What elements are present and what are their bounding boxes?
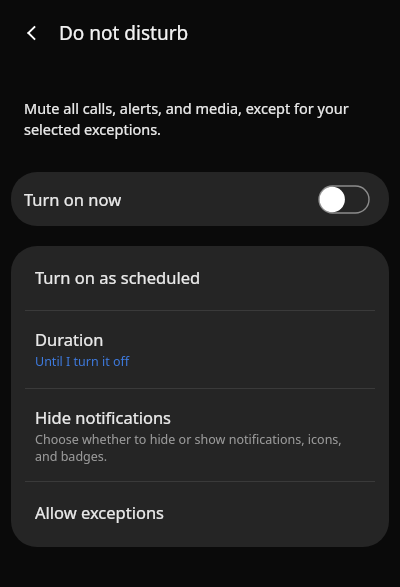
staticText: Allow exceptions bbox=[35, 501, 165, 523]
staticText: Mute all calls, alerts, and media, excep… bbox=[24, 98, 352, 140]
staticText: Choose whether to hide or show notificat… bbox=[35, 431, 365, 465]
button[interactable]: Hide notifications bbox=[11, 389, 389, 481]
staticText: Until I turn it off bbox=[35, 353, 130, 370]
button[interactable]: Turn on now toggle bbox=[319, 186, 369, 213]
button[interactable]: Allow exceptions bbox=[11, 482, 389, 547]
button[interactable]: Turn on now bbox=[11, 172, 389, 226]
staticText: Do not disturb bbox=[59, 20, 189, 46]
staticText: Duration bbox=[35, 328, 104, 350]
button[interactable]: Back bbox=[14, 15, 50, 51]
button[interactable]: Duration bbox=[11, 311, 389, 388]
staticText: Hide notifications bbox=[35, 406, 172, 428]
button[interactable]: Turn on as scheduled bbox=[11, 246, 389, 310]
staticText: Turn on as scheduled bbox=[35, 266, 201, 288]
staticText: Turn on now bbox=[24, 188, 122, 210]
